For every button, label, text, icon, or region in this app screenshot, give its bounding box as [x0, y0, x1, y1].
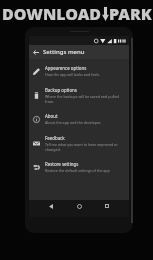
- staticText: PARK: [109, 3, 152, 25]
- staticText: Appearence options: [45, 65, 87, 71]
- button[interactable]: Backup options: [29, 83, 129, 107]
- button[interactable]: Restore settings: [29, 155, 129, 179]
- staticText: Backup options: [45, 87, 77, 93]
- staticText: Settings menu: [43, 48, 85, 56]
- staticText: Restore the default settings of the app: [45, 168, 110, 173]
- button[interactable]: Recents: [101, 200, 113, 212]
- staticText: DOWNLOAD: [2, 3, 102, 25]
- button[interactable]: Home: [73, 200, 85, 212]
- button[interactable]: Feedback: [29, 131, 129, 155]
- button[interactable]: Appearence options: [29, 59, 129, 83]
- staticText: About the app and the developer.: [45, 120, 102, 125]
- staticText: About: [45, 113, 58, 119]
- staticText: How the app will looks and feels.: [45, 72, 101, 77]
- staticText: Where the backups will be saved and pull…: [45, 94, 126, 104]
- staticText: Tell me what you want to have improved o…: [45, 142, 126, 152]
- button[interactable]: Back: [45, 200, 57, 212]
- staticText: Restore settings: [45, 161, 79, 167]
- button[interactable]: About: [29, 107, 129, 131]
- staticText: Feedback: [45, 135, 65, 141]
- button[interactable]: Back: [29, 45, 43, 59]
